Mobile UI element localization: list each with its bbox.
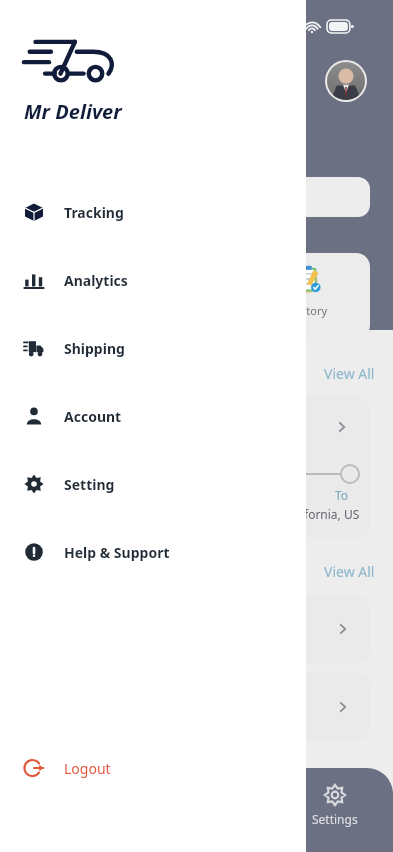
button[interactable]: Settings [312, 784, 358, 827]
button[interactable]: Tracking [0, 194, 306, 230]
button[interactable]: Logout [0, 750, 306, 786]
button[interactable]: Profile [325, 60, 367, 102]
staticText: Shipping [64, 339, 125, 358]
button[interactable]: Shipping [0, 330, 306, 366]
button[interactable] [250, 177, 370, 217]
button[interactable]: Account [0, 398, 306, 434]
staticText: Account [64, 407, 122, 426]
staticText: Logout [64, 759, 111, 778]
staticText: Setting [64, 475, 115, 494]
button[interactable]: To [230, 396, 370, 538]
button[interactable]: View All [250, 558, 380, 584]
button[interactable] [230, 595, 370, 663]
button[interactable]: View All [250, 360, 380, 386]
staticText: To [335, 487, 349, 503]
staticText: fornia, US [304, 506, 360, 522]
staticText: Tracking [64, 203, 124, 222]
staticText: Help & Support [64, 543, 170, 562]
staticText: Mr Deliver [24, 98, 122, 125]
button[interactable]: Help & Support [0, 534, 306, 570]
button[interactable]: Setting [0, 466, 306, 502]
button[interactable]: Analytics [0, 262, 306, 298]
button[interactable]: History [248, 253, 370, 339]
staticText: Settings [312, 811, 358, 827]
staticText: View All [324, 364, 375, 383]
staticText: Analytics [64, 271, 128, 290]
staticText: View All [324, 562, 375, 581]
staticText: History [290, 303, 328, 318]
button[interactable] [230, 673, 370, 741]
